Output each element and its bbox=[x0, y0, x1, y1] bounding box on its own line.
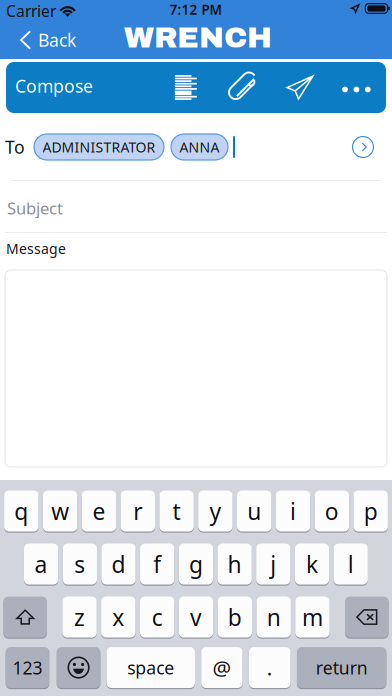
staticText: WRENCH bbox=[124, 21, 272, 54]
staticText: k bbox=[306, 548, 318, 579]
button[interactable]: Attach bbox=[216, 62, 270, 113]
staticText: 123 bbox=[12, 656, 42, 680]
staticText: ADMINISTRATOR bbox=[42, 137, 155, 156]
button[interactable]: m bbox=[295, 596, 330, 638]
staticText: z bbox=[74, 601, 85, 632]
staticText: w bbox=[51, 495, 69, 526]
button[interactable]: e bbox=[82, 490, 116, 532]
button[interactable]: t bbox=[159, 490, 194, 532]
button[interactable]: Back bbox=[18, 22, 98, 58]
staticText: space bbox=[127, 656, 174, 680]
staticText: c bbox=[152, 601, 163, 632]
button[interactable]: ANNA bbox=[171, 134, 228, 160]
staticText: l bbox=[348, 548, 354, 579]
staticText: r bbox=[133, 495, 142, 526]
staticText: f bbox=[153, 548, 161, 579]
button[interactable]: d bbox=[101, 543, 136, 585]
button[interactable]: Shift bbox=[3, 596, 47, 638]
button[interactable]: n bbox=[256, 596, 291, 638]
button[interactable]: b bbox=[218, 596, 252, 638]
staticText: h bbox=[228, 548, 242, 579]
button[interactable]: i bbox=[276, 490, 310, 532]
staticText: x bbox=[112, 601, 124, 632]
staticText: 7:12 PM bbox=[169, 0, 222, 19]
button[interactable]: 123 bbox=[6, 646, 49, 689]
staticText: return bbox=[316, 656, 368, 680]
button[interactable]: q bbox=[4, 490, 38, 532]
staticText: u bbox=[247, 495, 261, 526]
button[interactable]: z bbox=[62, 596, 97, 638]
button[interactable]: r bbox=[121, 490, 155, 532]
staticText: To bbox=[5, 135, 25, 159]
button[interactable]: p bbox=[353, 490, 388, 532]
button[interactable]: @ bbox=[201, 646, 242, 689]
button[interactable]: u bbox=[237, 490, 271, 532]
staticText: q bbox=[14, 495, 28, 526]
button[interactable]: More bbox=[329, 64, 383, 115]
button[interactable]: . bbox=[249, 646, 291, 689]
button[interactable]: space bbox=[106, 646, 195, 689]
staticText: Message bbox=[6, 239, 66, 258]
button[interactable]: x bbox=[101, 596, 135, 638]
button[interactable]: a bbox=[24, 543, 58, 585]
staticText: i bbox=[290, 495, 296, 526]
button[interactable]: Send bbox=[273, 62, 327, 113]
button[interactable]: w bbox=[43, 490, 77, 532]
staticText: p bbox=[364, 495, 378, 526]
button[interactable]: Emoji bbox=[57, 646, 100, 689]
button[interactable]: y bbox=[198, 490, 233, 532]
staticText: g bbox=[189, 548, 203, 579]
button[interactable]: s bbox=[63, 543, 97, 585]
button[interactable]: ADMINISTRATOR bbox=[34, 134, 164, 160]
staticText: j bbox=[270, 548, 276, 579]
staticText: d bbox=[111, 548, 125, 579]
staticText: Compose bbox=[15, 74, 93, 98]
staticText: Back bbox=[38, 28, 76, 52]
staticText: o bbox=[325, 495, 339, 526]
button[interactable]: j bbox=[256, 543, 290, 585]
staticText: a bbox=[35, 548, 48, 579]
button[interactable]: v bbox=[179, 596, 213, 638]
button[interactable]: f bbox=[140, 543, 174, 585]
button[interactable]: c bbox=[140, 596, 174, 638]
staticText: m bbox=[302, 601, 323, 632]
button[interactable]: l bbox=[333, 543, 368, 585]
staticText: s bbox=[74, 548, 85, 579]
staticText: y bbox=[209, 495, 221, 526]
staticText: t bbox=[173, 495, 181, 526]
staticText: e bbox=[92, 495, 105, 526]
staticText: Subject bbox=[7, 197, 63, 219]
button[interactable]: h bbox=[217, 543, 252, 585]
button[interactable]: k bbox=[295, 543, 329, 585]
button[interactable]: Show all recipients bbox=[352, 136, 374, 158]
staticText: . bbox=[267, 653, 273, 682]
button[interactable]: return bbox=[297, 646, 386, 689]
staticText: Carrier bbox=[6, 0, 56, 22]
staticText: n bbox=[267, 601, 281, 632]
button[interactable]: g bbox=[179, 543, 213, 585]
staticText: @ bbox=[212, 653, 231, 682]
staticText: v bbox=[190, 601, 202, 632]
button[interactable]: Delete bbox=[345, 596, 389, 638]
button[interactable]: o bbox=[315, 490, 349, 532]
staticText: b bbox=[228, 601, 242, 632]
button[interactable]: Format bbox=[159, 62, 213, 113]
staticText: ANNA bbox=[179, 137, 219, 156]
